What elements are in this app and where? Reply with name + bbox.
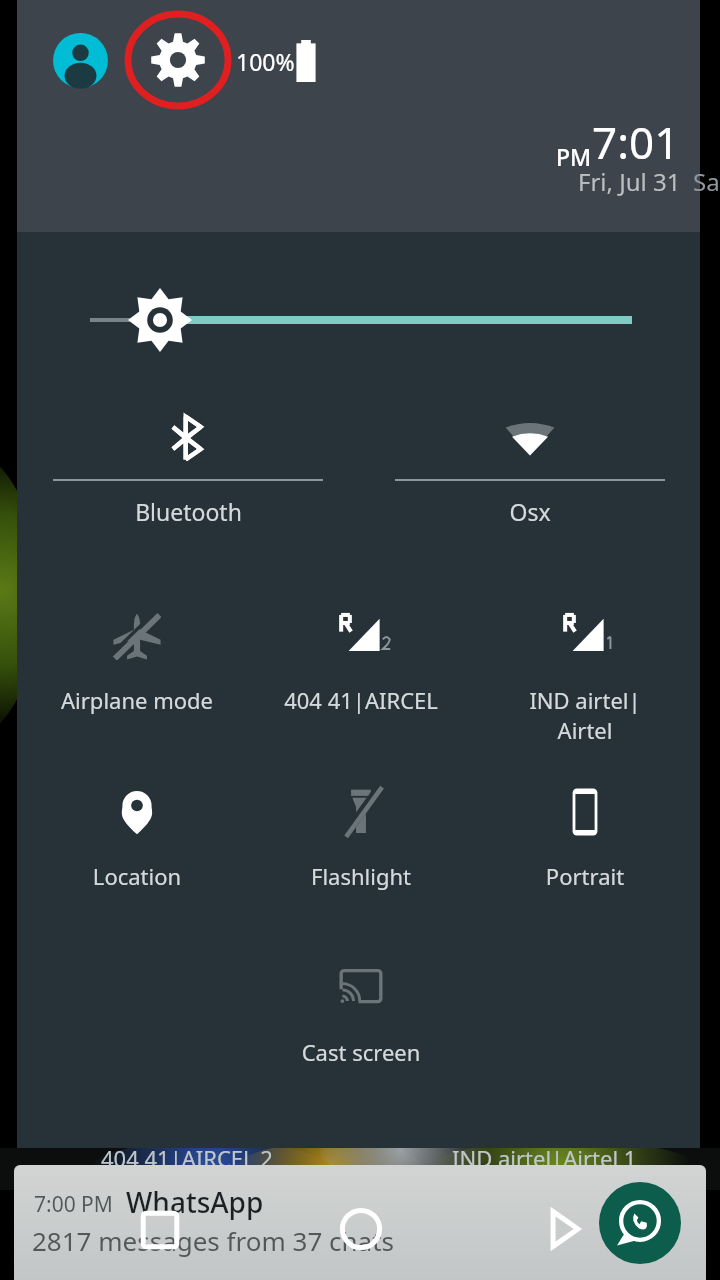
button[interactable]: 7:00 PM	[14, 1165, 706, 1280]
button[interactable]: Osx	[359, 395, 701, 565]
button[interactable]: Portrait	[508, 781, 662, 931]
button[interactable]: Home	[330, 1198, 392, 1260]
staticText: IND airtel|Airtel	[508, 685, 662, 745]
button[interactable]: Recents	[130, 1200, 190, 1260]
button[interactable]: Bluetooth	[17, 395, 359, 565]
button[interactable]: Airplane mode	[60, 605, 214, 755]
staticText: WhatsApp	[126, 1183, 264, 1221]
staticText: Flashlight	[284, 861, 438, 891]
staticText: Airplane mode	[60, 685, 214, 715]
button[interactable]: Settings	[126, 12, 230, 108]
button[interactable]: Back	[532, 1198, 594, 1260]
staticText: Fri, Jul 31	[578, 165, 681, 198]
button[interactable]: IND airtel|Airtel	[508, 605, 662, 755]
staticText: Cast screen	[284, 1037, 438, 1067]
staticText: 404 41|AIRCEL	[284, 685, 438, 715]
staticText: 2817 messages from 37 chats	[32, 1223, 395, 1258]
button[interactable]: Flashlight	[284, 781, 438, 931]
staticText: Bluetooth	[135, 496, 242, 527]
button[interactable]: Location	[60, 781, 214, 931]
staticText: 404 41|AIRCEL 2	[101, 1143, 273, 1173]
staticText: Sa	[693, 165, 720, 198]
staticText: PM	[556, 141, 592, 172]
button[interactable]: User	[53, 33, 108, 88]
button[interactable]: 404 41|AIRCEL	[284, 605, 438, 755]
staticText: 100%	[236, 46, 295, 77]
staticText: IND airtel|Airtel 1	[452, 1143, 637, 1173]
staticText: 7:01	[592, 112, 680, 172]
staticText: Osx	[509, 496, 551, 527]
button[interactable]: Brightness	[60, 285, 660, 355]
staticText: Portrait	[508, 861, 662, 891]
staticText: 7:00 PM	[34, 1190, 113, 1219]
button[interactable]: WhatsApp	[599, 1182, 681, 1264]
staticText: Location	[60, 861, 214, 891]
button[interactable]: Cast screen	[284, 957, 438, 1107]
